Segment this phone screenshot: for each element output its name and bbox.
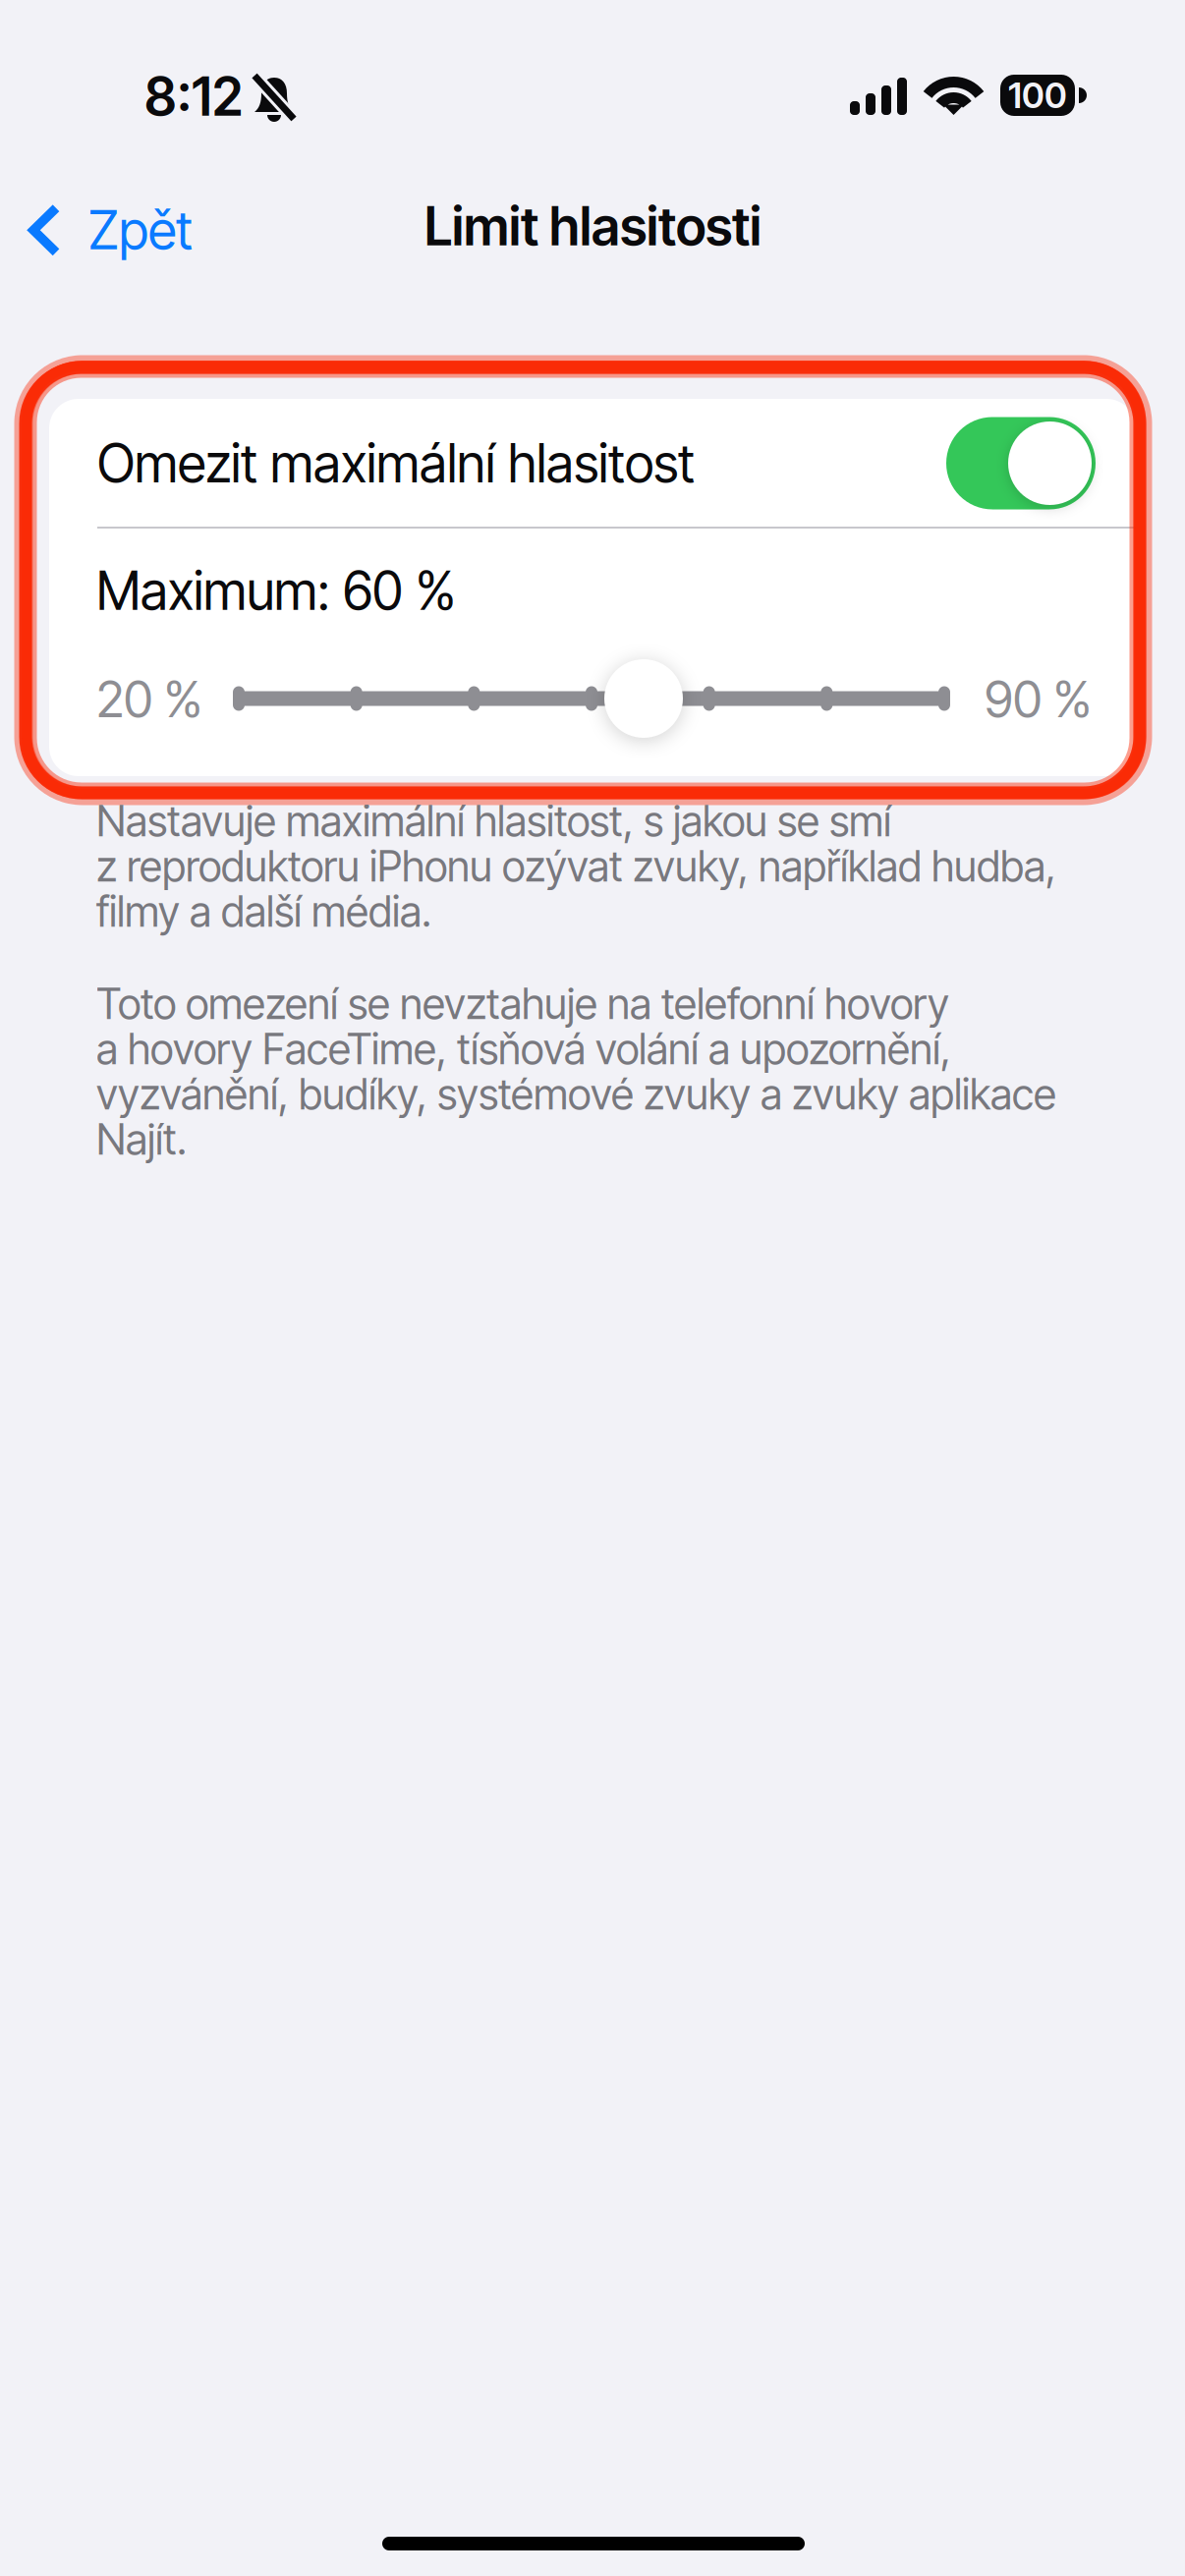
staticText: Zpět <box>88 198 193 262</box>
staticText: 8:12 <box>144 65 243 128</box>
staticText: 90 % <box>985 669 1092 729</box>
button[interactable]: Omezit maximální hlasitost <box>0 0 1185 2576</box>
staticText: z reproduktoru iPhonu ozývat zvuky, např… <box>96 841 1056 892</box>
staticText: 100 <box>1008 74 1067 117</box>
staticText: Najít. <box>96 1114 187 1165</box>
staticText: Maximum: 60 % <box>96 559 456 622</box>
staticText: Toto omezení se nevztahuje na telefonní … <box>96 979 949 1029</box>
staticText: vyzvánění, budíky, systémové zvuky a zvu… <box>96 1069 1056 1120</box>
staticText: filmy a další média. <box>96 886 431 937</box>
staticText: 20 % <box>96 669 202 729</box>
staticText: Limit hlasitosti <box>424 195 762 258</box>
button[interactable]: Zpět <box>0 0 1185 2576</box>
staticText: Nastavuje maximální hlasitost, s jakou s… <box>96 796 891 846</box>
staticText: Omezit maximální hlasitost <box>97 431 695 495</box>
staticText: a hovory FaceTime, tísňová volání a upoz… <box>96 1024 951 1074</box>
